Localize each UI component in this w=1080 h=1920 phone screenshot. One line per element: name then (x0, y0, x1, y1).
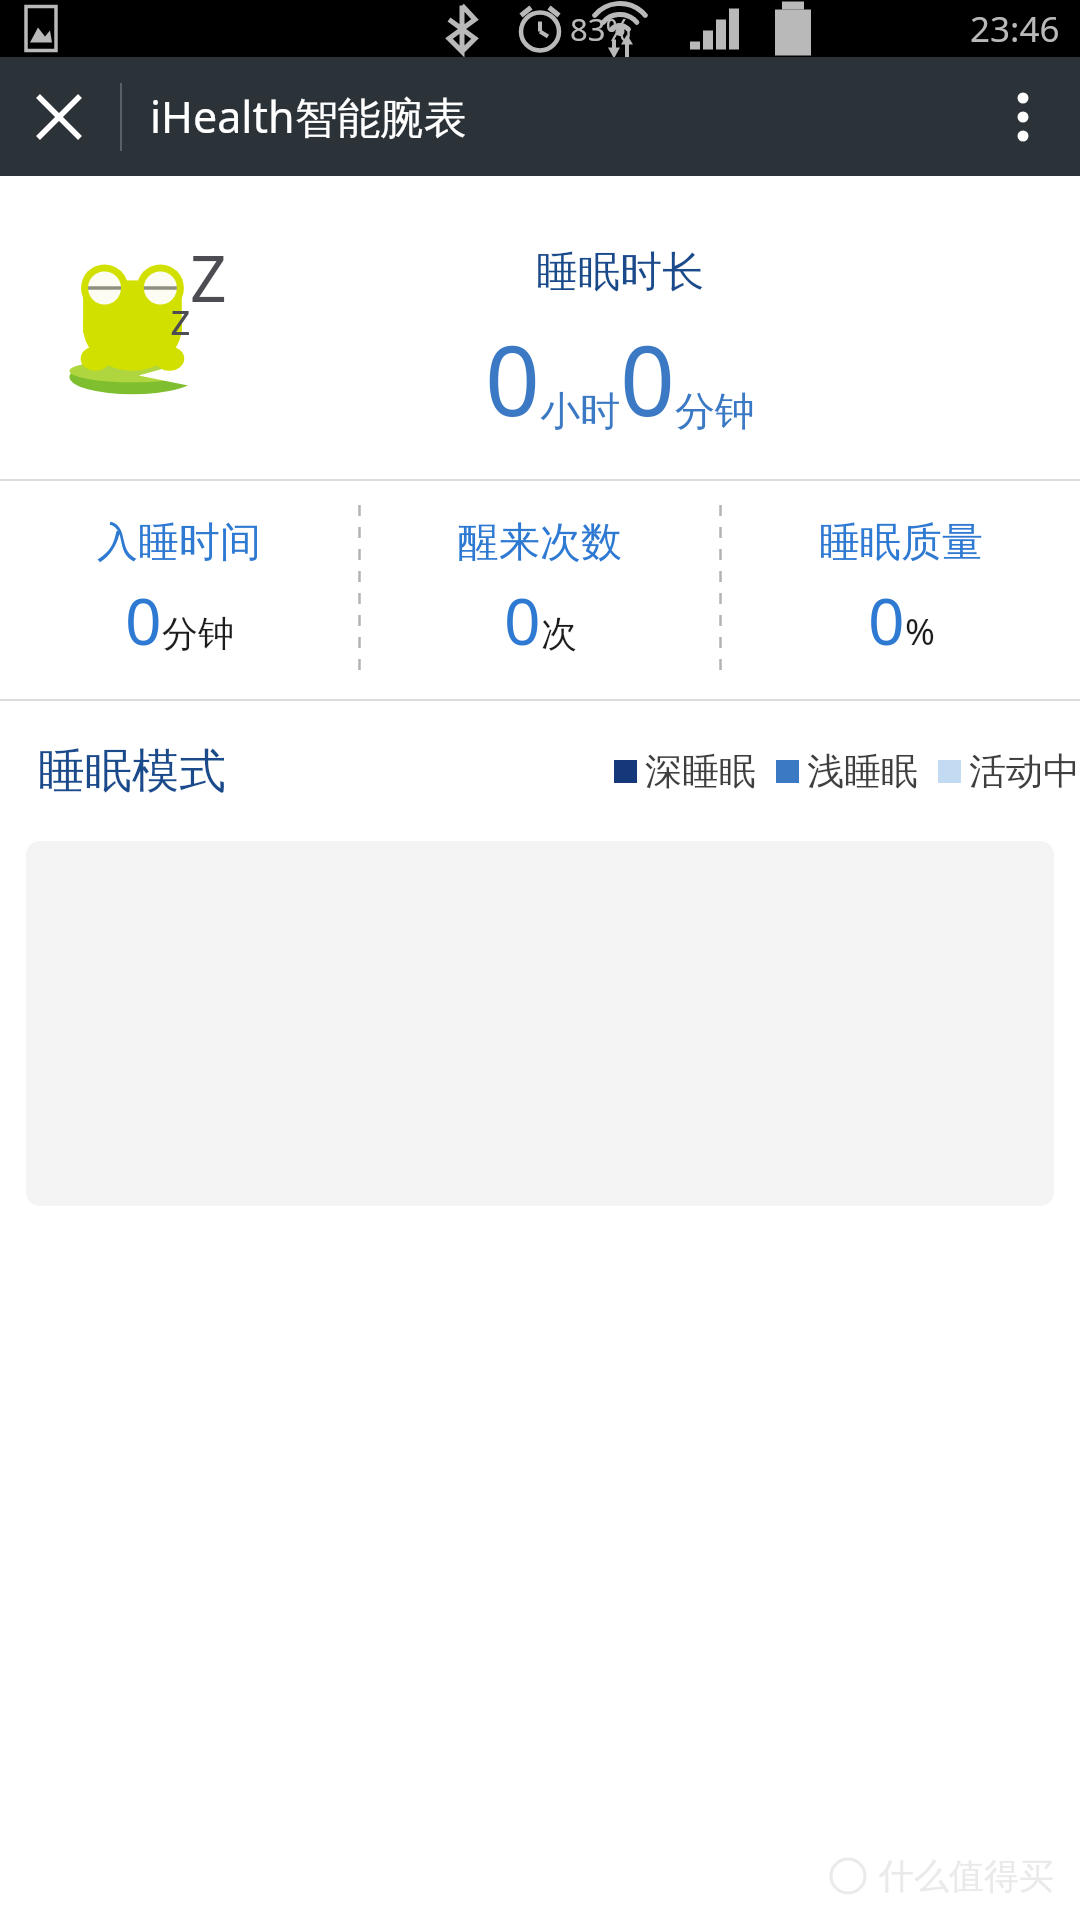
staticText: 睡眠质量 (819, 517, 983, 569)
staticText: 0 (868, 577, 905, 664)
staticText: iHealth智能腕表 (150, 87, 467, 146)
staticText: 睡眠模式 (38, 742, 226, 801)
staticText: 0 (125, 577, 162, 664)
staticText: 深睡眠 (645, 748, 756, 795)
staticText: 分钟 (162, 611, 234, 656)
staticText: 0 (620, 313, 675, 444)
staticText: 什么值得买 (879, 1854, 1054, 1898)
staticText: 浅睡眠 (807, 748, 918, 795)
staticText: % (905, 607, 935, 656)
staticText: 次 (541, 611, 577, 656)
staticText: 23:46 (970, 5, 1060, 53)
staticText: 小时 (540, 386, 620, 436)
staticText: z (170, 288, 191, 348)
staticText: 醒来次数 (458, 517, 622, 569)
button[interactable]: 醒来次数 (361, 481, 719, 699)
staticText: 活动中 (969, 748, 1080, 795)
staticText: Z (190, 234, 227, 321)
button[interactable]: 入睡时间 (0, 481, 358, 699)
staticText: 睡眠时长 (536, 246, 704, 299)
staticText: 入睡时间 (97, 517, 261, 569)
staticText: 分钟 (675, 386, 755, 436)
staticText: 0 (485, 313, 540, 444)
staticText: 83% (570, 8, 632, 50)
staticText: 0 (504, 577, 541, 664)
button[interactable]: More options (980, 74, 1066, 160)
button[interactable]: Close (16, 74, 102, 160)
button[interactable]: 睡眠质量 (722, 481, 1080, 699)
